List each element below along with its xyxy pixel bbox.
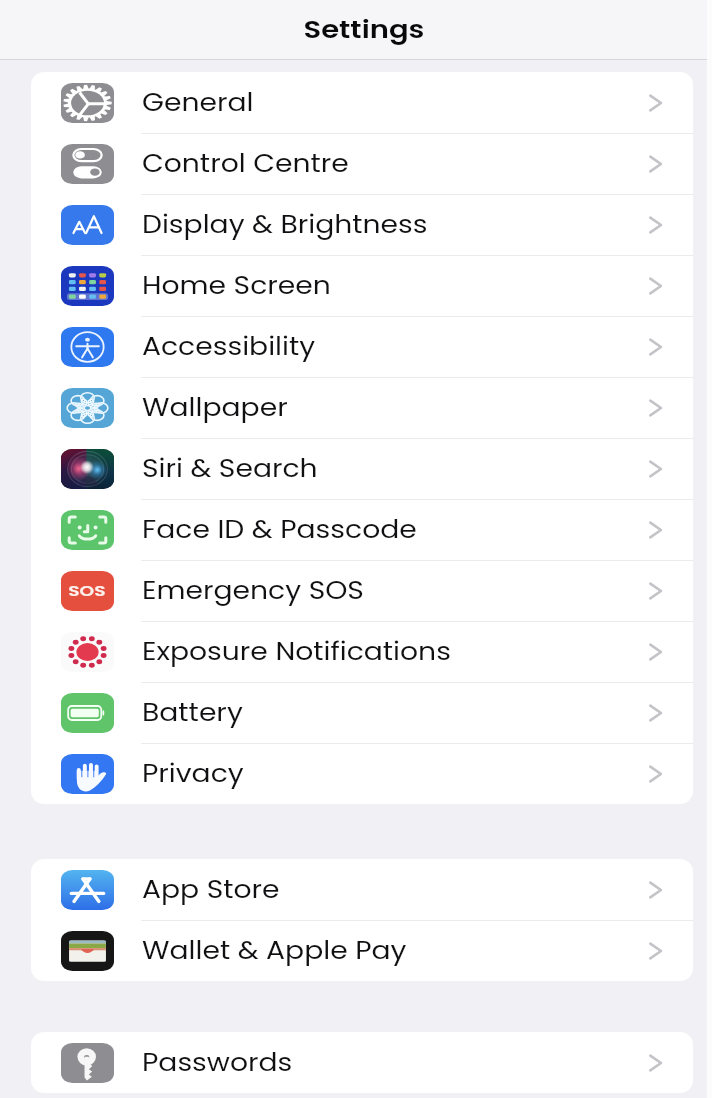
button[interactable]: Passwords bbox=[31, 1032, 693, 1093]
staticText: Battery bbox=[142, 696, 243, 730]
staticText: App Store bbox=[142, 873, 281, 907]
button[interactable]: Accessibility bbox=[31, 316, 693, 377]
staticText: Emergency SOS bbox=[142, 574, 364, 608]
staticText: Settings bbox=[303, 13, 424, 47]
staticText: Wallpaper bbox=[142, 391, 288, 425]
staticText: Accessibility bbox=[142, 330, 316, 364]
staticText: Control Centre bbox=[142, 147, 349, 181]
button[interactable]: SOS bbox=[31, 560, 693, 621]
button[interactable]: Home Screen bbox=[31, 255, 693, 316]
staticText: Siri & Search bbox=[142, 452, 318, 486]
staticText: Face ID & Passcode bbox=[142, 513, 417, 547]
staticText: Privacy bbox=[142, 757, 244, 791]
button[interactable]: Siri & Search bbox=[31, 438, 693, 499]
button[interactable]: Control Centre bbox=[31, 133, 693, 194]
button[interactable]: Wallpaper bbox=[31, 377, 693, 438]
button[interactable]: Display & Brightness bbox=[31, 194, 693, 255]
button[interactable]: Wallet & Apple Pay bbox=[31, 920, 693, 981]
button[interactable]: App Store bbox=[31, 859, 693, 920]
button[interactable]: Exposure Notifications bbox=[31, 621, 693, 682]
staticText: Wallet & Apple Pay bbox=[142, 934, 407, 968]
staticText: Passwords bbox=[142, 1046, 292, 1080]
staticText: Display & Brightness bbox=[142, 208, 427, 242]
staticText: Exposure Notifications bbox=[142, 635, 451, 669]
button[interactable]: Battery bbox=[31, 682, 693, 743]
button[interactable]: Face ID & Passcode bbox=[31, 499, 693, 560]
staticText: SOS bbox=[68, 581, 107, 601]
button[interactable]: General bbox=[31, 72, 693, 133]
button[interactable]: Privacy bbox=[31, 743, 693, 804]
staticText: General bbox=[142, 86, 254, 120]
staticText: Home Screen bbox=[142, 269, 331, 303]
